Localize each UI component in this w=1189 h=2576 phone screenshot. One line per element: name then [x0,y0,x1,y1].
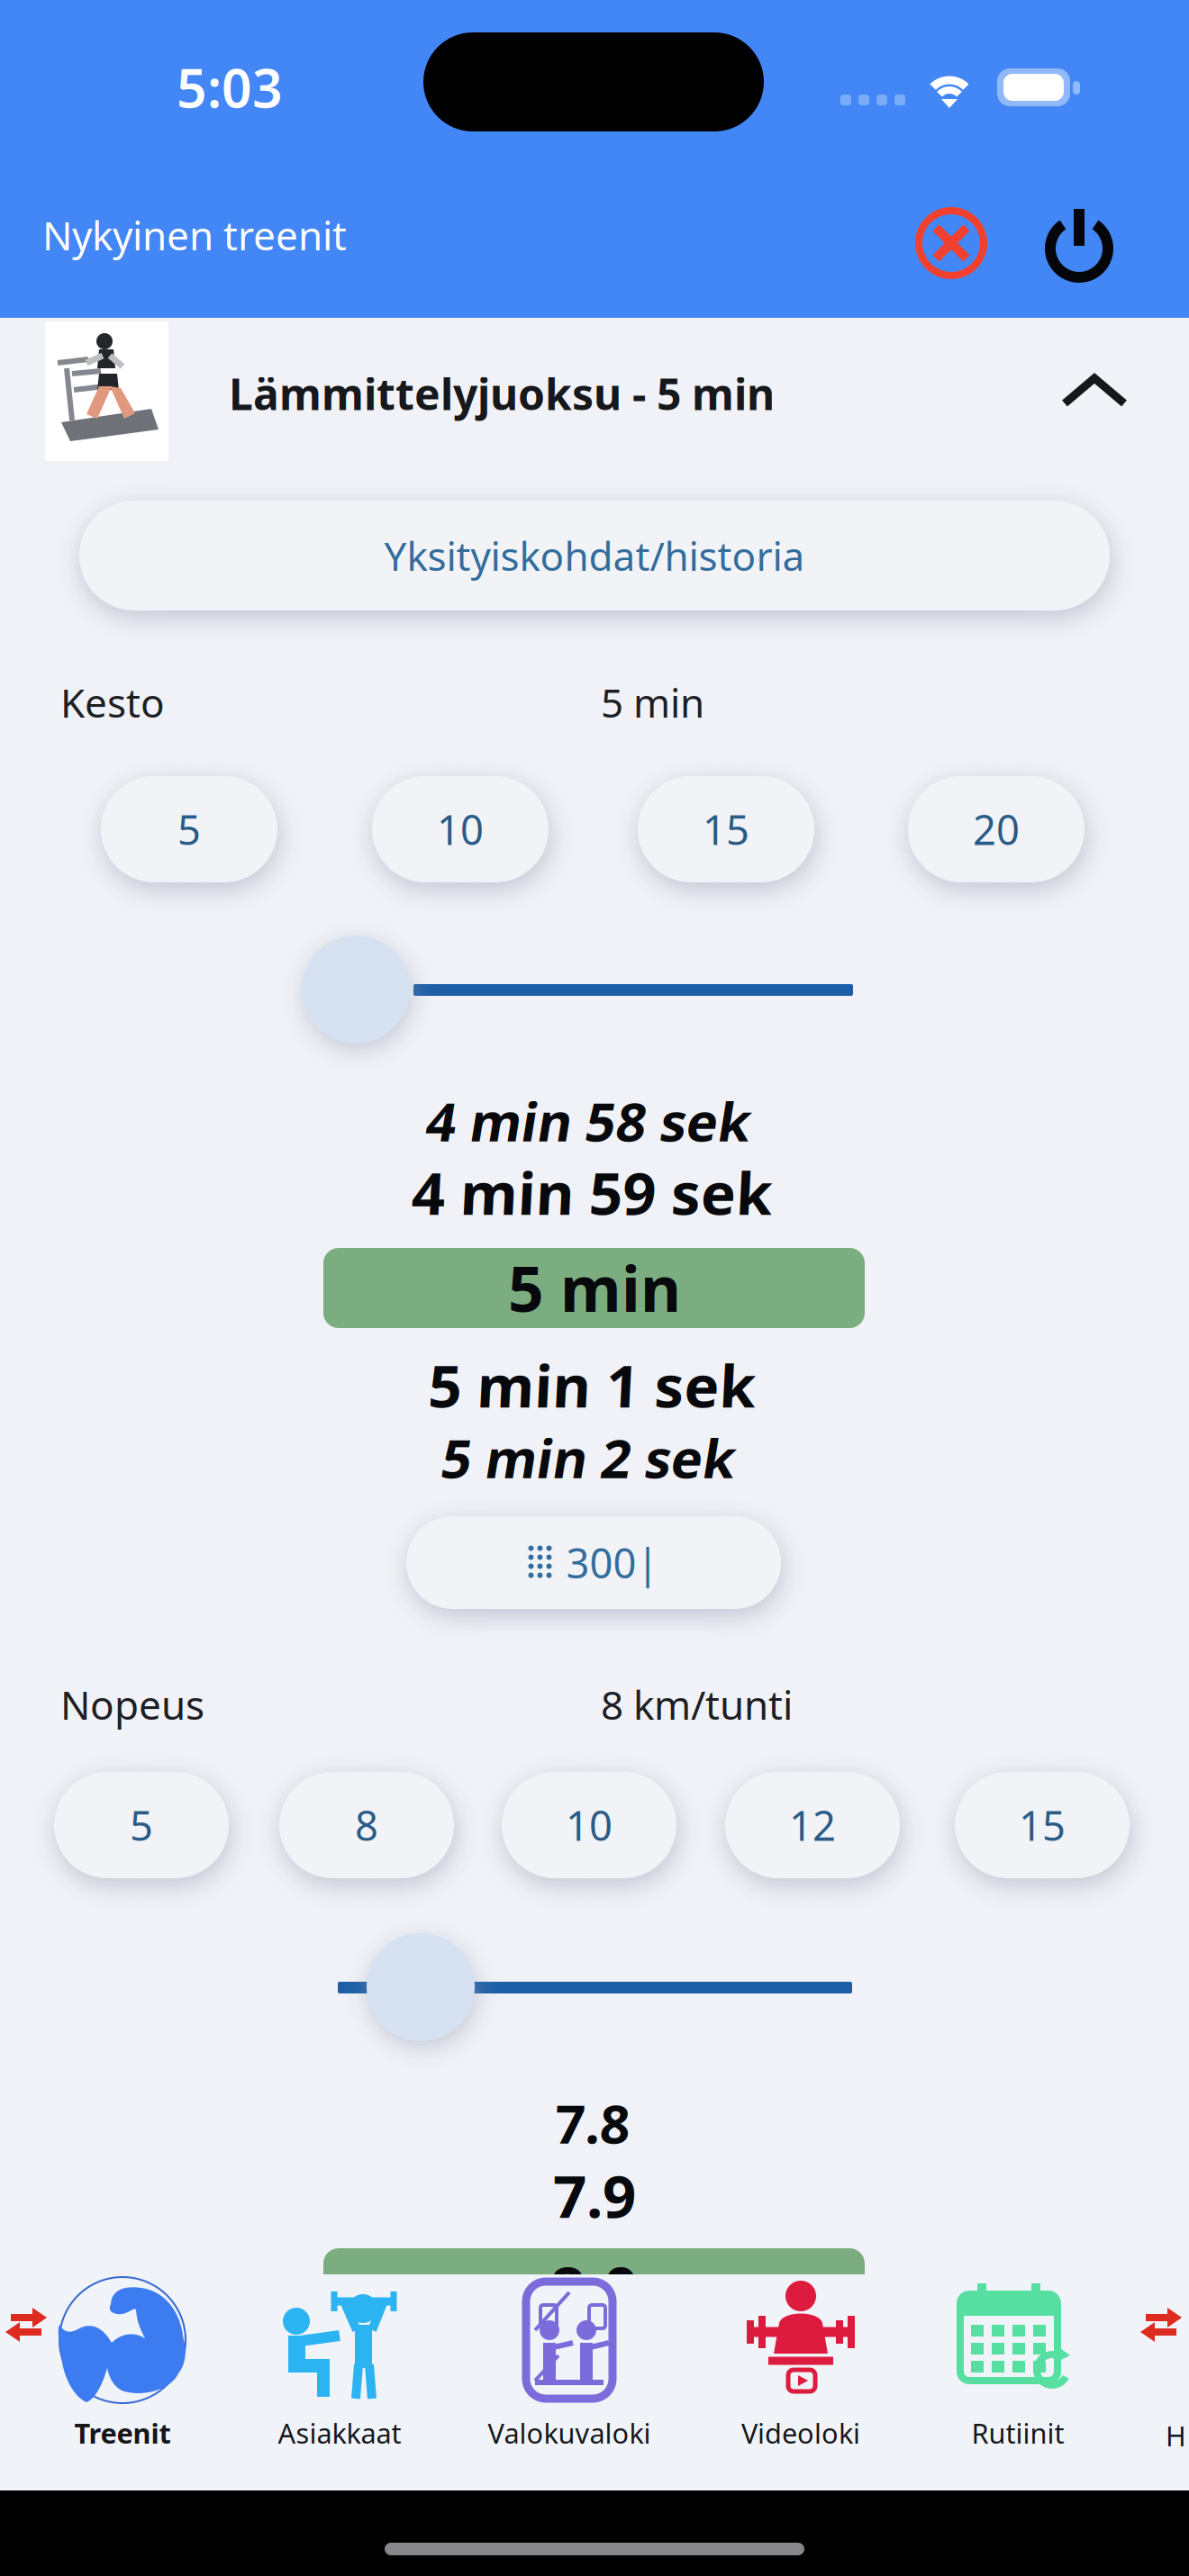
button[interactable]: 300| [406,1516,781,1609]
button[interactable]: Treenit [14,2274,231,2468]
staticText: Nopeus [60,1678,204,1731]
staticText: H [1166,2417,1186,2454]
staticText: Rutiinit [971,2414,1064,2451]
staticText: 12 [789,1798,836,1852]
staticText: Yksityiskohdat/historia [384,529,805,582]
staticText: Lämmittelyjuoksu - 5 min [229,365,775,422]
staticText: Asiakkaat [278,2414,401,2451]
button[interactable]: 15 [638,776,814,882]
staticText: Treenit [74,2414,171,2451]
staticText: 20 [973,802,1020,856]
button[interactable]: Valokuvaloki [461,2274,677,2468]
staticText: 15 [703,802,749,856]
staticText: 7.9 [553,2156,636,2234]
staticText: 5 [130,1798,153,1852]
button[interactable]: 10 [502,1772,676,1878]
button[interactable]: 12 [725,1772,900,1878]
staticText: 300| [566,1536,659,1590]
staticText: Videoloki [741,2414,860,2451]
button[interactable]: Videoloki [693,2274,909,2468]
staticText: 7.8 [557,2088,632,2158]
staticText: Valokuvaloki [488,2414,651,2451]
staticText: 5 min 1 sek [431,1346,758,1424]
button[interactable]: Rutiinit [910,2274,1126,2468]
staticText: 4 min 59 sek [414,1153,775,1231]
staticText: 10 [566,1798,613,1852]
staticText: Nykyinen treenit [42,209,347,261]
button[interactable]: Close workout [904,196,998,290]
staticText: 5 min 2 sek [448,1423,741,1493]
button[interactable]: 20 [908,776,1085,882]
button[interactable]: 5 [101,776,277,882]
button[interactable]: Yksityiskohdat/historia [79,501,1110,610]
staticText: Kesto [60,676,165,729]
button[interactable]: Collapse section [1059,369,1130,414]
button[interactable]: 5 [54,1772,229,1878]
staticText: 4 min 58 sek [432,1086,757,1156]
staticText: 5 [177,802,201,856]
button[interactable]: Asiakkaat [231,2274,448,2468]
button[interactable]: 15 [955,1772,1130,1878]
staticText: 8.0 [550,2247,639,2330]
staticText: 8 [355,1798,378,1852]
button[interactable]: 10 [372,776,549,882]
button[interactable]: 8 [279,1772,454,1878]
staticText: 10 [437,802,484,856]
button[interactable]: End workout [1032,196,1126,290]
staticText: 8 km/tunti [601,1678,793,1731]
staticText: 5:03 [177,52,283,122]
staticText: 5 min [508,1246,681,1329]
staticText: 5 min [601,676,704,729]
staticText: 15 [1019,1798,1066,1852]
